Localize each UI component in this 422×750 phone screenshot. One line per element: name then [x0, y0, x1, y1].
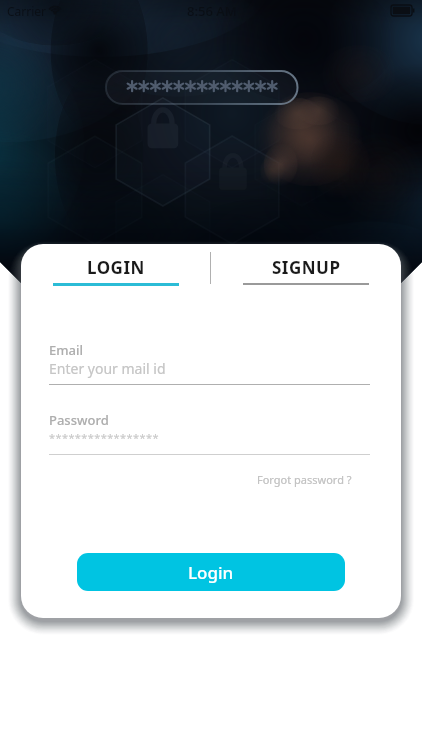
button[interactable]: Forgot password ?	[257, 472, 352, 487]
staticText: SIGNUP	[272, 256, 341, 279]
button[interactable]: LOGIN	[21, 244, 211, 286]
staticText: Login	[188, 561, 234, 584]
button[interactable]: Login	[77, 553, 345, 591]
staticText: 8:56 AM	[187, 2, 237, 20]
staticText: Email	[49, 341, 84, 359]
staticText: LOGIN	[87, 256, 145, 279]
staticText: Password	[49, 411, 109, 429]
staticText: *****************	[49, 430, 159, 445]
staticText: Carrier	[7, 3, 47, 19]
button[interactable]: SIGNUP	[211, 244, 401, 285]
staticText: Enter your mail id	[49, 359, 166, 378]
staticText: Forgot password ?	[257, 472, 352, 487]
